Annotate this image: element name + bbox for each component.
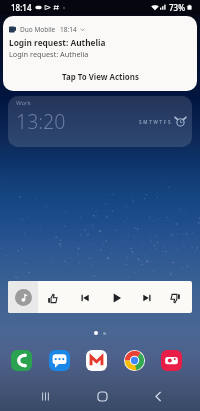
staticText: Login request: Authelia xyxy=(9,37,106,48)
staticText: Login request: Authelia xyxy=(9,49,89,59)
button[interactable]: Next xyxy=(138,289,156,307)
staticText: Duo Mobile xyxy=(20,25,56,34)
button[interactable]: Phone xyxy=(11,350,32,371)
button[interactable]: Camera xyxy=(161,350,182,371)
staticText: 18:14 xyxy=(60,25,77,34)
staticText: Work xyxy=(16,99,31,107)
button[interactable]: Messages xyxy=(49,350,70,371)
button[interactable]: Thumbs up xyxy=(8,281,192,313)
button[interactable]: Thumbs up xyxy=(43,289,61,307)
button[interactable]: Thumbs down xyxy=(166,289,184,307)
button[interactable]: Back xyxy=(146,384,170,408)
button[interactable]: Recents xyxy=(33,384,57,408)
button[interactable]: Play xyxy=(108,289,126,307)
button[interactable]: Chrome xyxy=(124,350,145,371)
button[interactable]: Gmail xyxy=(86,350,107,371)
button[interactable]: Previous xyxy=(76,289,94,307)
button[interactable]: Home xyxy=(90,384,114,408)
button[interactable]: Work xyxy=(8,96,192,147)
staticText: S M T W T F S xyxy=(139,119,171,125)
staticText: 13:20 xyxy=(16,108,66,135)
staticText: 18:14 xyxy=(11,2,32,13)
button[interactable]: Duo Mobile xyxy=(3,16,197,91)
staticText: Tap To View Actions xyxy=(62,72,139,83)
staticText: 73% xyxy=(169,2,185,13)
